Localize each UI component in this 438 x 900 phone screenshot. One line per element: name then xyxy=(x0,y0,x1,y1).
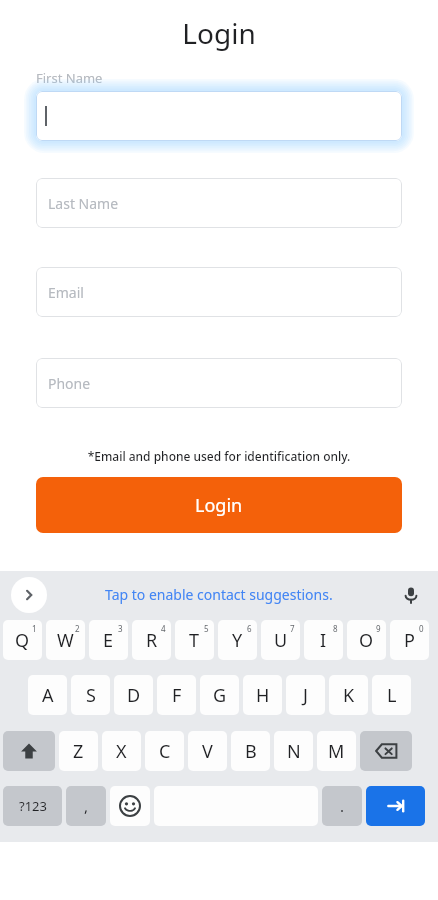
staticText: Login xyxy=(195,493,243,518)
staticText: 6 xyxy=(247,623,252,634)
button[interactable]: . xyxy=(322,786,362,826)
staticText: G xyxy=(213,683,227,708)
staticText: 4 xyxy=(161,623,166,634)
staticText: F xyxy=(172,683,182,708)
button[interactable]: F xyxy=(157,675,196,715)
button[interactable]: L xyxy=(372,675,411,715)
staticText: W xyxy=(57,628,74,653)
button[interactable]: D xyxy=(114,675,153,715)
staticText: R xyxy=(146,628,158,653)
staticText: A xyxy=(42,683,54,708)
staticText: U xyxy=(274,628,288,653)
button[interactable]: S xyxy=(71,675,110,715)
button[interactable] xyxy=(36,91,402,141)
button[interactable]: P xyxy=(390,620,429,660)
button[interactable]: I xyxy=(304,620,343,660)
button[interactable]: Tap to enable contact suggestions. xyxy=(105,585,333,604)
staticText: T xyxy=(189,628,200,653)
button[interactable]: ?123 xyxy=(3,786,62,826)
staticText: L xyxy=(387,683,397,708)
button[interactable]: Enter xyxy=(366,786,425,826)
staticText: Last Name xyxy=(48,194,119,213)
button[interactable]: A xyxy=(28,675,67,715)
staticText: ?123 xyxy=(19,797,47,815)
staticText: H xyxy=(256,683,270,708)
staticText: 0 xyxy=(419,623,424,634)
button[interactable]: N xyxy=(274,731,313,771)
staticText: 1 xyxy=(32,623,37,634)
staticText: N xyxy=(287,739,301,764)
button[interactable]: Voice input xyxy=(394,578,428,612)
staticText: Z xyxy=(73,739,84,764)
staticText: D xyxy=(127,683,141,708)
staticText: First Name xyxy=(36,69,103,87)
staticText: O xyxy=(359,628,374,653)
button[interactable]: Phone xyxy=(36,358,402,408)
staticText: S xyxy=(86,683,96,708)
staticText: Y xyxy=(232,628,243,653)
staticText: Phone xyxy=(48,374,91,393)
staticText: 2 xyxy=(75,623,80,634)
button[interactable]: G xyxy=(200,675,239,715)
button[interactable]: , xyxy=(66,786,106,826)
staticText: . xyxy=(340,796,345,816)
button[interactable]: Backspace xyxy=(360,731,412,771)
staticText: C xyxy=(159,739,171,764)
button[interactable]: Q xyxy=(3,620,42,660)
staticText: 3 xyxy=(118,623,123,634)
button[interactable]: H xyxy=(243,675,282,715)
button[interactable]: C xyxy=(145,731,184,771)
button[interactable]: Last Name xyxy=(36,178,402,228)
staticText: Email xyxy=(48,283,84,302)
staticText: V xyxy=(202,739,213,764)
staticText: *Email and phone used for identification… xyxy=(36,448,402,464)
button[interactable]: O xyxy=(347,620,386,660)
button[interactable]: Z xyxy=(59,731,98,771)
button[interactable]: K xyxy=(329,675,368,715)
staticText: P xyxy=(404,628,415,653)
button[interactable]: Emoji xyxy=(110,786,150,826)
staticText: K xyxy=(343,683,355,708)
button[interactable]: Email xyxy=(36,267,402,317)
button[interactable]: V xyxy=(188,731,227,771)
staticText: Login xyxy=(0,14,438,52)
staticText: J xyxy=(303,683,308,708)
staticText: 8 xyxy=(333,623,338,634)
staticText: M xyxy=(328,739,345,764)
button[interactable]: T xyxy=(175,620,214,660)
staticText: Q xyxy=(15,628,30,653)
button[interactable]: R xyxy=(132,620,171,660)
button[interactable]: E xyxy=(89,620,128,660)
button[interactable]: M xyxy=(317,731,356,771)
staticText: B xyxy=(245,739,257,764)
button[interactable]: Login xyxy=(36,477,402,533)
staticText: 5 xyxy=(204,623,209,634)
button[interactable]: W xyxy=(46,620,85,660)
button[interactable]: X xyxy=(102,731,141,771)
button[interactable]: Shift xyxy=(3,731,55,771)
button[interactable]: B xyxy=(231,731,270,771)
staticText: I xyxy=(320,628,327,653)
button[interactable]: J xyxy=(286,675,325,715)
button[interactable]: U xyxy=(261,620,300,660)
button[interactable]: Expand suggestions xyxy=(11,577,47,613)
staticText: , xyxy=(84,796,89,816)
staticText: X xyxy=(116,739,127,764)
button[interactable]: Y xyxy=(218,620,257,660)
staticText: 7 xyxy=(290,623,295,634)
staticText: 9 xyxy=(376,623,381,634)
staticText: E xyxy=(103,628,114,653)
